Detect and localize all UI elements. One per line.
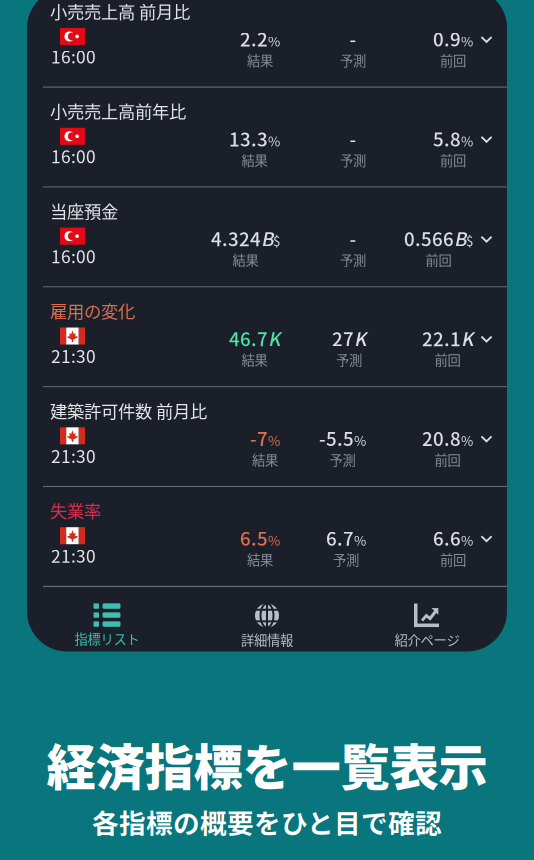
staticText: $ — [466, 231, 473, 250]
staticText: - — [349, 25, 356, 52]
button[interactable]: 指標リスト — [27, 587, 187, 652]
staticText: % — [461, 430, 473, 450]
staticText: 5.8 — [433, 125, 461, 152]
staticText: 21:30 — [51, 543, 96, 568]
staticText: 前回 — [434, 350, 460, 369]
staticText: 6.6 — [433, 524, 461, 551]
staticText: 2.2 — [240, 25, 268, 52]
staticText: 前回 — [425, 250, 451, 269]
staticText: % — [354, 530, 366, 550]
staticText: B — [454, 225, 466, 252]
staticText: 経済指標を一覧表示 — [46, 728, 487, 799]
button[interactable]: 当座預金 — [27, 188, 507, 286]
staticText: 前回 — [440, 549, 466, 569]
staticText: % — [268, 131, 280, 150]
staticText: -5.5 — [319, 424, 354, 451]
staticText: 雇用の変化 — [50, 298, 135, 323]
staticText: 結果 — [247, 549, 273, 569]
staticText: 小売売上高前年比 — [50, 98, 186, 123]
staticText: 結果 — [241, 150, 267, 169]
staticText: % — [268, 31, 280, 50]
staticText: 結果 — [247, 50, 273, 70]
staticText: 6.7 — [326, 524, 354, 551]
staticText: 前回 — [434, 450, 460, 469]
staticText: 指標リスト — [74, 629, 139, 648]
staticText: 予測 — [329, 450, 355, 469]
staticText: 16:00 — [51, 243, 96, 268]
staticText: % — [268, 430, 280, 450]
button[interactable]: 雇用の変化 — [27, 287, 507, 386]
staticText: 0.9 — [433, 25, 461, 52]
staticText: 21:30 — [51, 343, 96, 368]
staticText: 13.3 — [229, 125, 268, 152]
staticText: - — [349, 225, 356, 252]
staticText: 16:00 — [51, 143, 96, 168]
staticText: 結果 — [241, 350, 267, 369]
staticText: 紹介ページ — [394, 630, 459, 649]
staticText: 結果 — [252, 450, 278, 469]
staticText: 前回 — [440, 150, 466, 169]
staticText: 20.8 — [422, 424, 461, 451]
staticText: 4.324 — [211, 225, 261, 252]
staticText: 結果 — [232, 250, 258, 269]
staticText: % — [461, 530, 473, 550]
staticText: K — [354, 324, 366, 351]
staticText: 前回 — [440, 50, 466, 70]
button[interactable]: 詳細情報 — [187, 587, 347, 652]
staticText: 小売売上高 前月比 — [50, 0, 190, 23]
button[interactable]: 失業率 — [27, 487, 507, 586]
staticText: 各指標の概要をひと目で確認 — [92, 802, 442, 841]
staticText: 予測 — [333, 549, 359, 569]
staticText: 予測 — [336, 350, 362, 369]
staticText: 27 — [332, 324, 354, 351]
staticText: $ — [273, 231, 280, 250]
staticText: 予測 — [340, 50, 366, 70]
staticText: 予測 — [340, 150, 366, 169]
staticText: -7 — [250, 424, 268, 451]
staticText: 22.1 — [422, 324, 461, 351]
staticText: % — [461, 131, 473, 150]
staticText: 6.5 — [240, 524, 268, 551]
staticText: 詳細情報 — [241, 630, 293, 649]
staticText: % — [354, 430, 366, 450]
staticText: B — [261, 225, 273, 252]
staticText: 建築許可件数 前月比 — [50, 398, 207, 423]
staticText: 0.566 — [404, 225, 454, 252]
staticText: 失業率 — [50, 498, 101, 523]
button[interactable]: 紹介ページ — [347, 587, 507, 652]
staticText: % — [268, 530, 280, 550]
button[interactable]: 建築許可件数 前月比 — [27, 387, 507, 486]
staticText: 21:30 — [51, 443, 96, 468]
button[interactable]: 小売売上高前年比 — [27, 88, 507, 186]
staticText: 46.7 — [229, 324, 268, 351]
staticText: 当座預金 — [50, 198, 118, 223]
button[interactable]: 小売売上高 前月比 — [27, 0, 507, 86]
staticText: 16:00 — [51, 43, 96, 68]
staticText: % — [461, 31, 473, 50]
staticText: K — [461, 324, 473, 351]
staticText: K — [268, 324, 280, 351]
staticText: - — [349, 125, 356, 152]
staticText: 予測 — [340, 250, 366, 269]
